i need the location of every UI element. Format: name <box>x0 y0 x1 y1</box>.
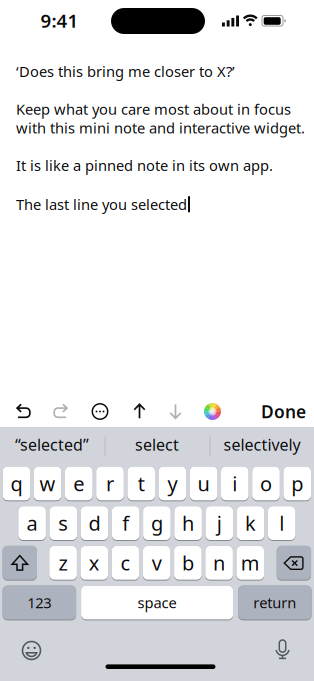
staticText: space <box>138 593 177 612</box>
button[interactable]: f <box>112 506 139 541</box>
staticText: n <box>213 549 225 576</box>
button[interactable]: h <box>174 506 202 541</box>
button[interactable]: e <box>65 466 93 501</box>
button[interactable]: c <box>112 546 139 581</box>
button[interactable]: i <box>221 466 249 501</box>
staticText: q <box>10 470 22 497</box>
button[interactable]: w <box>34 466 61 501</box>
button[interactable]: a <box>18 506 46 541</box>
button[interactable]: s <box>49 506 77 541</box>
staticText: c <box>120 549 130 576</box>
button[interactable]: Emoji <box>21 640 41 660</box>
button[interactable]: y <box>159 466 186 501</box>
button[interactable]: “selected” <box>0 427 104 466</box>
staticText: f <box>122 510 129 536</box>
staticText: select <box>135 434 179 455</box>
button[interactable]: Done <box>261 400 306 423</box>
button[interactable]: selectively <box>210 427 314 466</box>
button[interactable]: t <box>127 466 155 501</box>
staticText: a <box>27 510 38 536</box>
staticText: m <box>241 549 260 576</box>
staticText: h <box>182 510 194 536</box>
button[interactable]: Delete <box>277 546 311 581</box>
button[interactable]: Previous line <box>129 401 149 421</box>
button[interactable]: q <box>3 466 30 501</box>
button[interactable]: Dictation <box>274 639 290 661</box>
button[interactable]: Shift <box>3 546 37 581</box>
staticText: It is like a pinned note in its own app. <box>16 156 273 175</box>
button[interactable]: z <box>49 546 77 581</box>
staticText: v <box>152 549 162 576</box>
button[interactable]: More <box>91 403 108 420</box>
staticText: selectively <box>223 434 300 455</box>
button[interactable]: return <box>238 586 312 620</box>
staticText: j <box>217 510 222 536</box>
button[interactable]: m <box>236 546 264 581</box>
button[interactable]: r <box>96 466 124 501</box>
staticText: ‘Does this bring me closer to X?’ <box>16 62 235 81</box>
button[interactable]: n <box>205 546 233 581</box>
staticText: with this mini note and interactive widg… <box>16 118 305 138</box>
staticText: d <box>88 510 100 536</box>
staticText: “selected” <box>15 434 89 455</box>
staticText: e <box>73 470 84 497</box>
button[interactable]: v <box>143 546 170 581</box>
staticText: y <box>167 470 177 497</box>
staticText: u <box>198 470 210 497</box>
button[interactable]: g <box>143 506 171 541</box>
staticText: Done <box>261 400 306 423</box>
button[interactable]: u <box>190 466 217 501</box>
staticText: t <box>138 470 145 497</box>
button[interactable]: j <box>205 506 233 541</box>
button[interactable]: d <box>81 506 108 541</box>
button[interactable]: Next line <box>165 401 185 421</box>
staticText: b <box>182 549 194 576</box>
staticText: Keep what you care most about in focus <box>16 99 291 119</box>
button[interactable]: k <box>237 506 264 541</box>
staticText: s <box>58 510 68 536</box>
staticText: k <box>245 510 256 536</box>
staticText: i <box>232 470 237 497</box>
staticText: The last line you selected <box>16 194 187 214</box>
staticText: r <box>106 470 114 497</box>
staticText: z <box>59 549 68 576</box>
staticText: g <box>151 510 163 536</box>
button[interactable]: space <box>81 586 233 620</box>
button[interactable]: p <box>283 466 311 501</box>
button[interactable]: 123 <box>3 586 76 620</box>
button[interactable]: Undo <box>13 401 33 421</box>
button[interactable]: select <box>105 427 209 466</box>
staticText: 9:41 <box>40 8 78 33</box>
button[interactable]: Text color <box>204 403 221 420</box>
staticText: l <box>279 510 284 536</box>
staticText: return <box>253 593 296 612</box>
staticText: p <box>291 470 303 497</box>
staticText: 123 <box>27 593 51 612</box>
button[interactable]: x <box>80 546 108 581</box>
staticText: w <box>40 470 56 497</box>
button[interactable]: Redo <box>50 401 70 421</box>
button[interactable]: o <box>252 466 280 501</box>
staticText: x <box>89 549 100 576</box>
staticText: o <box>260 470 272 497</box>
button[interactable]: l <box>268 506 295 541</box>
button[interactable]: b <box>174 546 202 581</box>
